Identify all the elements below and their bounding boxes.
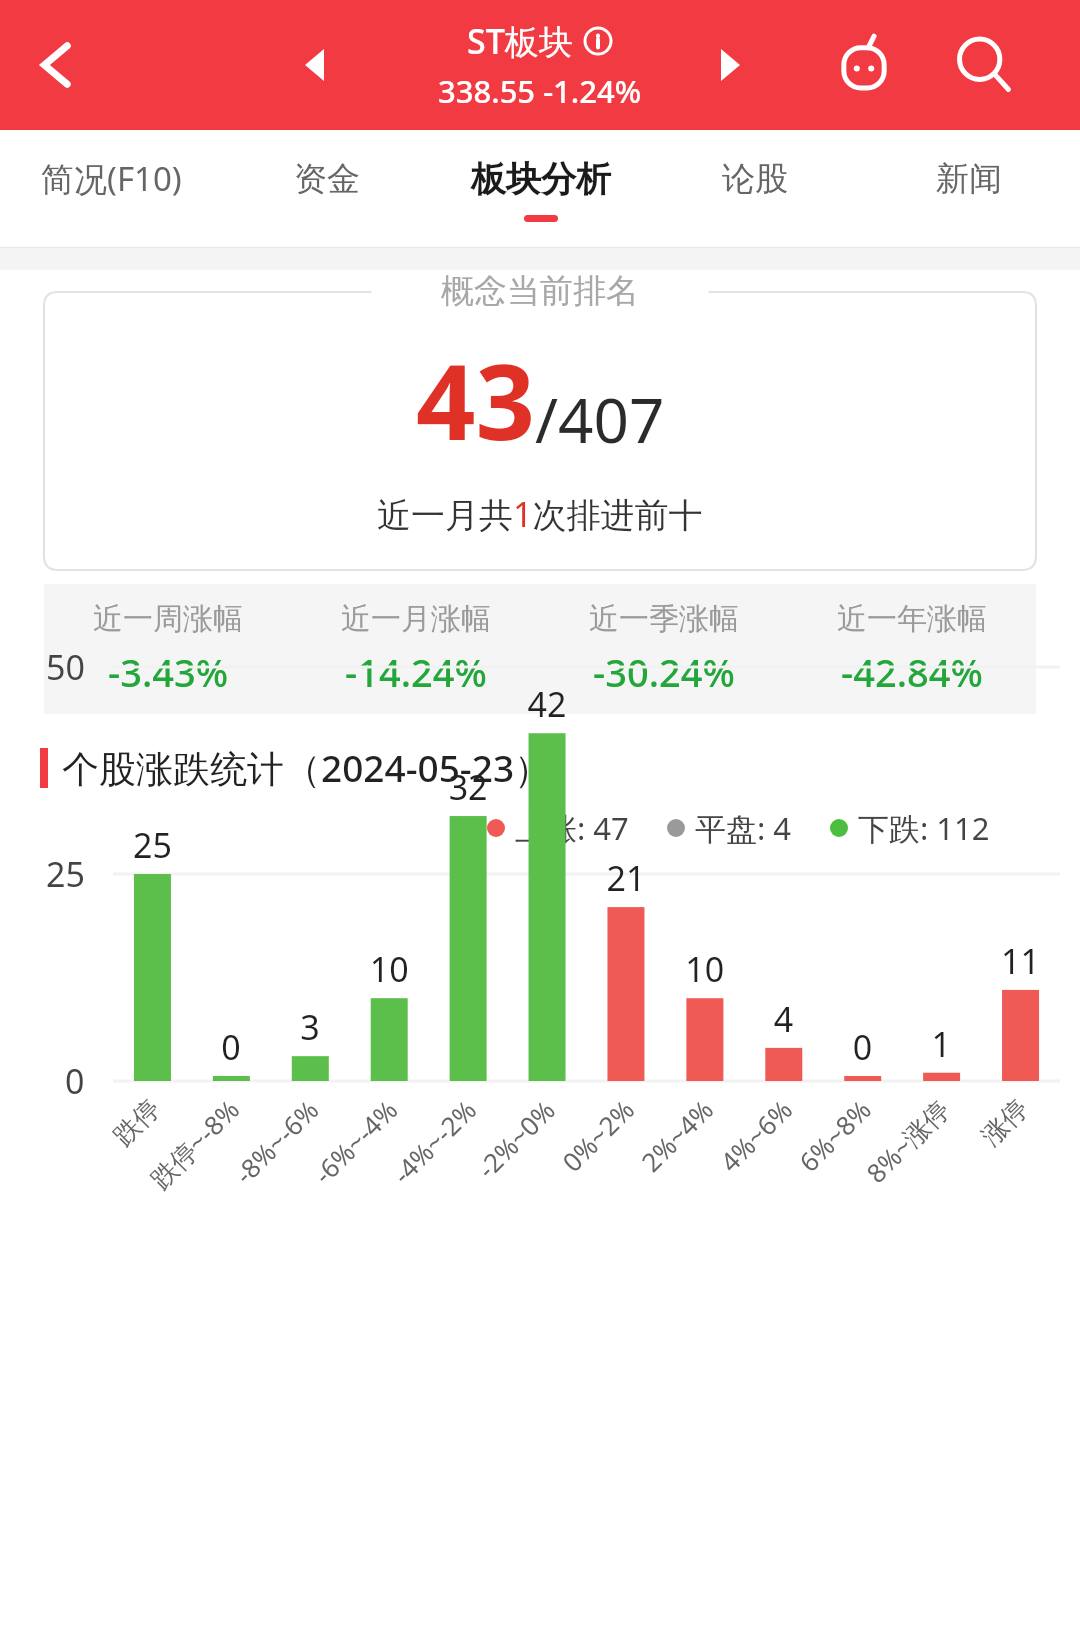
button[interactable]: Next (700, 35, 760, 95)
staticText: 近一月共1次排进前十 (377, 491, 703, 537)
button[interactable]: 平盘: 4 (667, 807, 792, 849)
button[interactable]: Search (948, 29, 1020, 101)
button[interactable]: Back (14, 28, 88, 102)
button[interactable]: 论股 (648, 130, 862, 248)
staticText: 近一季涨幅 (589, 600, 739, 638)
button[interactable]: ST板块 (438, 18, 642, 112)
staticText: -42.84% (841, 646, 983, 698)
staticText: 资金 (294, 158, 360, 200)
button[interactable]: 上涨: 47 (487, 807, 629, 849)
staticText: -14.24% (345, 646, 487, 698)
staticText: ST板块 (467, 18, 573, 64)
button[interactable]: 板块分析 (434, 130, 648, 248)
button[interactable]: 资金 (219, 130, 434, 248)
staticText: 概念当前排名 (441, 270, 639, 312)
staticText: 新闻 (936, 158, 1002, 200)
button[interactable]: 概念当前排名 (44, 270, 1036, 570)
button[interactable]: 近一周涨幅 (44, 584, 292, 714)
staticText: 近一周涨幅 (93, 600, 243, 638)
staticText: 338.55 -1.24% (438, 70, 642, 112)
button[interactable]: 简况(F10) (4, 130, 219, 248)
staticText: -30.24% (593, 646, 735, 698)
staticText: 近一月涨幅 (341, 600, 491, 638)
staticText: 43 (416, 329, 535, 471)
staticText: 近一年涨幅 (837, 600, 987, 638)
button[interactable]: Previous (285, 35, 345, 95)
button[interactable]: Assistant (828, 29, 900, 101)
staticText: 下跌: 112 (858, 807, 990, 849)
button[interactable]: 下跌: 112 (830, 807, 990, 849)
button[interactable]: 近一月涨幅 (292, 584, 540, 714)
staticText: /407 (535, 377, 665, 461)
staticText: 板块分析 (471, 157, 611, 201)
staticText: -3.43% (108, 646, 229, 698)
button[interactable]: 新闻 (862, 130, 1076, 248)
staticText: 上涨: 47 (515, 807, 629, 849)
button[interactable]: 近一季涨幅 (540, 584, 788, 714)
staticText: 平盘: 4 (695, 807, 792, 849)
staticText: 简况(F10) (41, 156, 182, 201)
staticText: 个股涨跌统计（2024-05-23） (62, 742, 552, 793)
button[interactable]: 近一年涨幅 (788, 584, 1036, 714)
staticText: 论股 (722, 158, 788, 200)
